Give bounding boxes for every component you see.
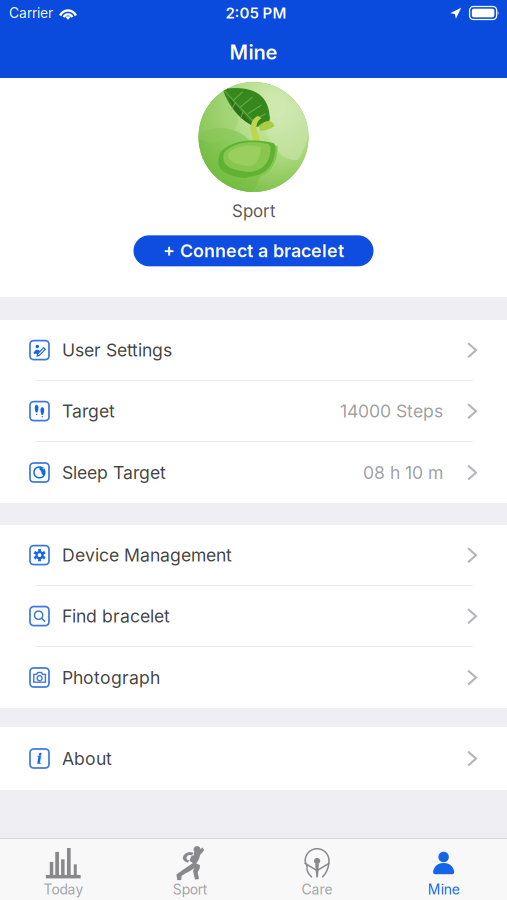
staticText: Sleep Target [62,462,166,483]
staticText: Sport [232,201,275,221]
staticText: Today [43,881,83,898]
button[interactable]: Today [0,839,127,900]
staticText: 2:05 PM [225,4,286,22]
staticText: 08 h 10 m [363,462,443,483]
button[interactable]: Device Management [0,525,507,586]
button[interactable]: Sleep Target [0,442,507,503]
staticText: Carrier [9,5,53,21]
staticText: Mine [229,40,277,64]
staticText: i [36,750,42,767]
staticText: Device Management [62,544,232,566]
staticText: Sport [173,881,208,898]
staticText: Target [62,400,115,422]
staticText: User Settings [62,339,172,361]
staticText: Find bracelet [62,605,170,627]
staticText: About [62,748,112,769]
staticText: Care [301,881,332,898]
button[interactable]: Mine [380,839,507,900]
staticText: Photograph [62,667,160,688]
button[interactable]: Photograph [0,647,507,708]
button[interactable]: User Settings [0,320,507,381]
staticText: 14000 Steps [340,400,443,422]
staticText: Mine [428,881,460,898]
button[interactable]: Sport [127,839,254,900]
button[interactable]: Find bracelet [0,586,507,647]
button[interactable]: + Connect a bracelet [133,235,373,266]
staticText: + Connect a bracelet [163,240,344,262]
button[interactable]: i [0,727,507,790]
button[interactable]: Care [253,839,380,900]
button[interactable]: Target [0,381,507,442]
